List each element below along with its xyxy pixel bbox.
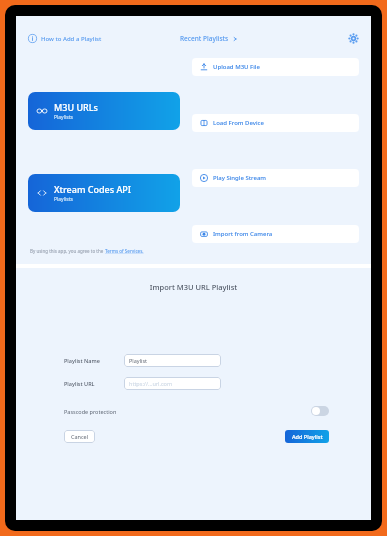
staticText: Playlists xyxy=(54,196,73,203)
button[interactable]: Upload M3U File xyxy=(192,58,359,76)
button[interactable]: https://...url.com xyxy=(124,377,221,390)
staticText: Passcode protection xyxy=(64,408,117,415)
button[interactable]: Import from Camera xyxy=(192,225,359,243)
button[interactable]: Recent Playlists xyxy=(180,34,238,43)
button[interactable]: How to Add a Playlist xyxy=(28,34,102,43)
staticText: Xtream Codes API xyxy=(54,183,131,195)
staticText: Recent Playlists xyxy=(180,34,229,43)
button[interactable]: Settings xyxy=(345,30,361,46)
staticText: Play Single Stream xyxy=(213,174,267,182)
staticText: https://...url.com xyxy=(129,380,173,387)
button[interactable]: Playlist xyxy=(124,354,221,367)
button[interactable]: M3U URLs xyxy=(28,92,180,130)
button[interactable]: Terms of Services. xyxy=(105,248,144,254)
button[interactable]: Cancel xyxy=(64,430,95,443)
staticText: How to Add a Playlist xyxy=(41,35,102,43)
button[interactable]: Load From Device xyxy=(192,114,359,132)
staticText: Playlist xyxy=(129,357,148,364)
staticText: Load From Device xyxy=(213,119,264,127)
staticText: Playlist Name xyxy=(64,357,100,364)
button[interactable]: Xtream Codes API xyxy=(28,174,180,212)
staticText: M3U URLs xyxy=(54,101,98,113)
staticText: Import from Camera xyxy=(213,230,273,238)
staticText: By using this app, you agree to the xyxy=(30,248,105,254)
staticText: Cancel xyxy=(71,433,89,440)
staticText: Playlists xyxy=(54,114,73,121)
staticText: Upload M3U File xyxy=(213,63,260,71)
button[interactable]: Add Playlist xyxy=(285,430,329,443)
staticText: Import M3U URL Playlist xyxy=(16,282,371,292)
staticText: Playlist URL xyxy=(64,380,95,387)
button[interactable]: Play Single Stream xyxy=(192,169,359,187)
button[interactable]: Passcode protection toggle xyxy=(311,406,329,416)
staticText: Add Playlist xyxy=(292,433,323,440)
